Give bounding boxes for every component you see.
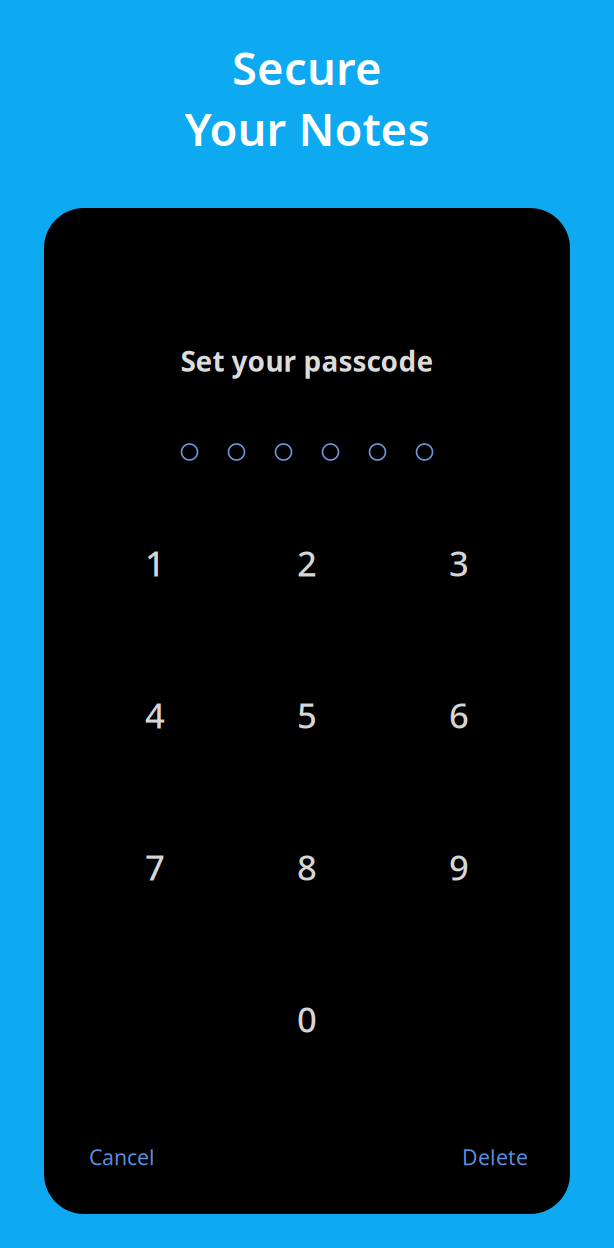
- staticText: 9: [449, 844, 469, 890]
- staticText: 5: [297, 692, 317, 738]
- staticText: 2: [297, 540, 317, 586]
- staticText: 1: [145, 540, 165, 586]
- button[interactable]: 1: [105, 513, 205, 613]
- button[interactable]: 2: [257, 513, 357, 613]
- button[interactable]: 3: [409, 513, 509, 613]
- staticText: Delete: [462, 1143, 528, 1171]
- staticText: Set your passcode: [180, 342, 433, 380]
- button[interactable]: 7: [105, 817, 205, 917]
- button[interactable]: Delete: [462, 1142, 528, 1172]
- button[interactable]: Cancel: [89, 1142, 155, 1172]
- staticText: 4: [145, 692, 165, 738]
- staticText: 3: [449, 540, 469, 586]
- staticText: Secure: [232, 37, 382, 98]
- button[interactable]: 6: [409, 665, 509, 765]
- button[interactable]: 9: [409, 817, 509, 917]
- staticText: 0: [297, 996, 317, 1042]
- staticText: 7: [145, 844, 165, 890]
- staticText: Your Notes: [184, 98, 429, 159]
- staticText: 8: [297, 844, 317, 890]
- staticText: Cancel: [89, 1143, 155, 1171]
- button[interactable]: 0: [257, 969, 357, 1069]
- button[interactable]: 8: [257, 817, 357, 917]
- button[interactable]: 5: [257, 665, 357, 765]
- staticText: 6: [449, 692, 469, 738]
- button[interactable]: 4: [105, 665, 205, 765]
